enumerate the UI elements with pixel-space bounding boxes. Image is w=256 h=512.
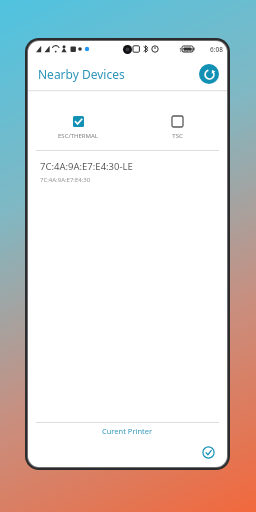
button[interactable]: TSC (166, 114, 189, 142)
staticText: 7C:4A:9A:E7:E4:30 (40, 176, 91, 184)
button[interactable]: 7C:4A:9A:E7:E4:30-LE (28, 151, 227, 193)
button[interactable]: Refresh (199, 64, 219, 84)
staticText: Curent Printer (102, 426, 153, 436)
staticText: 6:08 (210, 45, 223, 54)
button[interactable]: Selected printer (199, 443, 217, 461)
staticText: TSC (172, 132, 183, 140)
button[interactable]: ESC/THERMAL (52, 114, 104, 142)
staticText: Nearby Devices (38, 66, 125, 82)
staticText: 100% (179, 46, 194, 53)
button[interactable]: Curent Printer (28, 423, 227, 439)
staticText: 7C:4A:9A:E7:E4:30-LE (40, 160, 133, 173)
staticText: ESC/THERMAL (58, 132, 98, 140)
